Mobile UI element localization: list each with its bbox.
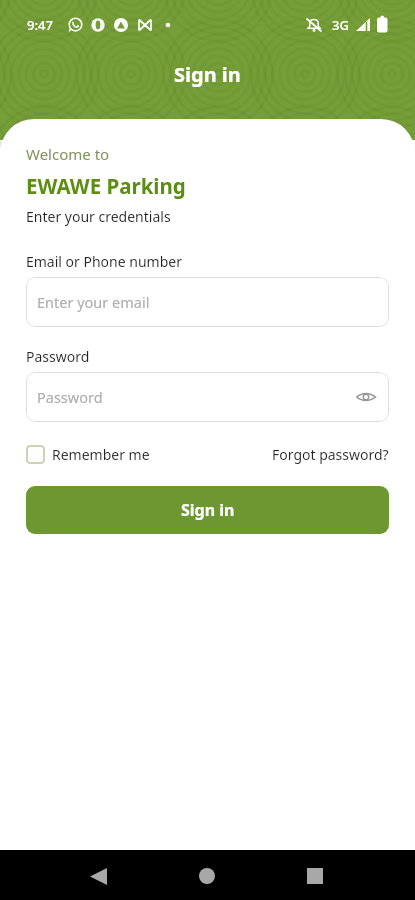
staticText: Sign in bbox=[181, 499, 235, 521]
button[interactable]: Back bbox=[80, 858, 116, 894]
button[interactable]: Sign in bbox=[26, 486, 389, 534]
staticText: Password bbox=[37, 387, 103, 407]
button[interactable]: Remember me checkbox bbox=[26, 445, 150, 464]
button[interactable]: Password bbox=[26, 372, 389, 422]
button[interactable]: Home bbox=[189, 858, 225, 894]
staticText: 9:47 bbox=[27, 16, 53, 34]
button[interactable]: Forgot password? bbox=[272, 445, 389, 464]
staticText: 3G bbox=[332, 16, 349, 34]
button[interactable]: Show password bbox=[356, 388, 376, 406]
staticText: Enter your credentials bbox=[26, 207, 171, 226]
staticText: Password bbox=[26, 347, 90, 366]
staticText: Email or Phone number bbox=[26, 252, 182, 271]
button[interactable]: Recents bbox=[297, 858, 333, 894]
staticText: Welcome to bbox=[26, 144, 110, 164]
staticText: EWAWE Parking bbox=[26, 172, 186, 200]
staticText: Sign in bbox=[174, 61, 241, 88]
staticText: Remember me bbox=[52, 445, 150, 464]
other: Remember me checkbox bbox=[26, 445, 45, 464]
staticText: Enter your email bbox=[37, 292, 150, 312]
button[interactable]: Enter your email bbox=[26, 277, 389, 327]
